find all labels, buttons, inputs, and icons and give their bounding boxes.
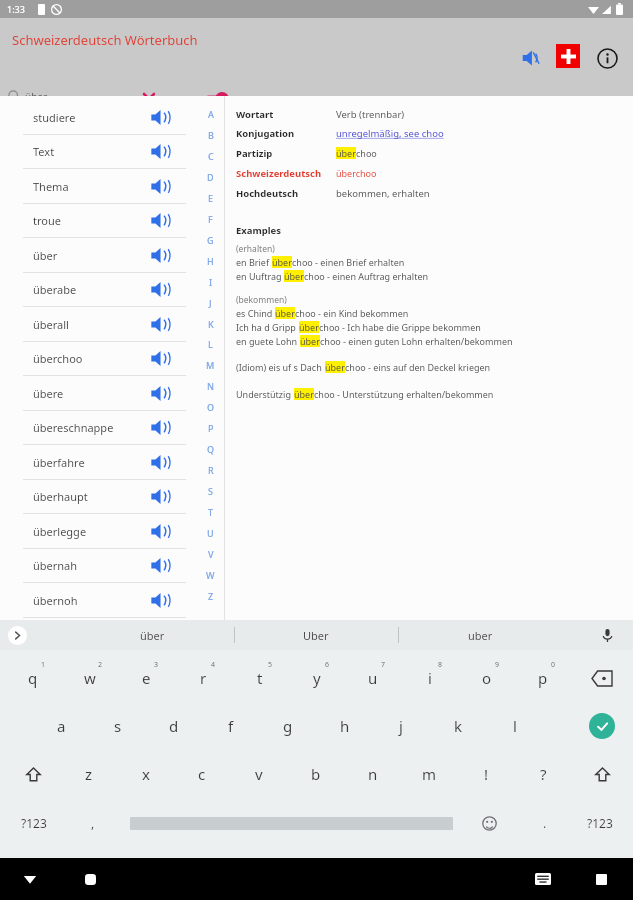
button[interactable]: über	[92, 620, 212, 650]
button[interactable]: Play Text	[146, 138, 172, 164]
button[interactable]: Volltext	[160, 87, 230, 111]
button[interactable]: Voice input	[596, 624, 618, 646]
button[interactable]: o	[459, 654, 515, 702]
button[interactable]: y	[289, 654, 345, 702]
button[interactable]: G	[196, 230, 225, 250]
button[interactable]: Uber	[256, 620, 376, 650]
button[interactable]: z	[61, 750, 117, 798]
button[interactable]: uber	[420, 620, 540, 650]
button[interactable]: R	[196, 460, 225, 480]
button[interactable]: übereschnappe	[0, 410, 196, 444]
button[interactable]: Text	[0, 134, 196, 168]
button[interactable]: j	[373, 702, 429, 750]
button[interactable]: v	[231, 750, 287, 798]
button[interactable]: Shift	[8, 750, 58, 798]
button[interactable]: Thema	[0, 169, 196, 203]
button[interactable]: k	[430, 702, 486, 750]
button[interactable]: Play studiere	[146, 104, 172, 130]
button[interactable]: unregelmäßig, see choo	[336, 127, 444, 140]
button[interactable]: überabe	[0, 272, 196, 306]
button[interactable]: Play überlegge	[146, 518, 172, 544]
button[interactable]: x	[118, 750, 174, 798]
button[interactable]: p	[515, 654, 571, 702]
button[interactable]: übernah	[0, 548, 196, 582]
button[interactable]: U	[196, 523, 225, 543]
button[interactable]: J	[196, 293, 225, 313]
button[interactable]: Play überall	[146, 311, 172, 337]
button[interactable]: übernoh	[0, 583, 196, 617]
button[interactable]: C	[196, 146, 225, 166]
button[interactable]: T	[196, 502, 225, 522]
button[interactable]: u	[345, 654, 401, 702]
button[interactable]: überfahre	[0, 445, 196, 479]
button[interactable]: t	[232, 654, 288, 702]
button[interactable]: Space	[126, 798, 456, 848]
button[interactable]: überhaupt	[0, 479, 196, 513]
button[interactable]: überlegge	[0, 514, 196, 548]
button[interactable]: Clear search	[137, 87, 161, 111]
button[interactable]: Play Thema	[146, 173, 172, 199]
button[interactable]: L	[196, 334, 225, 354]
button[interactable]: ?	[515, 750, 571, 798]
button[interactable]: l	[487, 702, 543, 750]
button[interactable]: B	[196, 125, 225, 145]
button[interactable]: i	[402, 654, 458, 702]
button[interactable]: überall	[0, 307, 196, 341]
button[interactable]: f	[203, 702, 259, 750]
button[interactable]: r	[175, 654, 231, 702]
button[interactable]: überchoo	[0, 341, 196, 375]
button[interactable]: Play übereschnappe	[146, 414, 172, 440]
button[interactable]: q	[5, 654, 61, 702]
button[interactable]: e	[118, 654, 174, 702]
button[interactable]: g	[260, 702, 316, 750]
button[interactable]: ?123	[6, 798, 62, 848]
button[interactable]: übere	[0, 376, 196, 410]
button[interactable]: E	[196, 188, 225, 208]
button[interactable]: Q	[196, 439, 225, 459]
button[interactable]: Play überchoo	[146, 345, 172, 371]
button[interactable]: über	[8, 86, 138, 110]
button[interactable]: Play überhaupt	[146, 483, 172, 509]
button[interactable]: M	[196, 355, 225, 375]
button[interactable]: Play über	[146, 242, 172, 268]
button[interactable]: b	[288, 750, 344, 798]
button[interactable]: H	[196, 251, 225, 271]
button[interactable]: Recent apps	[589, 867, 613, 891]
button[interactable]: S	[196, 481, 225, 501]
button[interactable]: Play übernah	[146, 552, 172, 578]
button[interactable]: Info	[593, 44, 621, 72]
button[interactable]: F	[196, 209, 225, 229]
button[interactable]: Comma	[68, 798, 118, 848]
button[interactable]: Z	[196, 586, 225, 606]
button[interactable]: c	[174, 750, 230, 798]
button[interactable]: w	[62, 654, 118, 702]
button[interactable]: Period	[520, 798, 570, 848]
button[interactable]: studiere	[0, 100, 196, 134]
button[interactable]: Emoji	[464, 798, 514, 848]
button[interactable]: Home	[78, 867, 102, 891]
button[interactable]: ?123	[572, 798, 628, 848]
button[interactable]: O	[196, 397, 225, 417]
button[interactable]: über	[0, 238, 196, 272]
button[interactable]: Mute sound	[517, 44, 545, 72]
button[interactable]: Play übere	[146, 380, 172, 406]
button[interactable]: troue	[0, 203, 196, 237]
button[interactable]: A	[196, 104, 225, 124]
button[interactable]: W	[196, 565, 225, 585]
button[interactable]: Play überfahre	[146, 449, 172, 475]
button[interactable]: Play überabe	[146, 276, 172, 302]
button[interactable]: Switch keyboard	[531, 867, 555, 891]
button[interactable]: P	[196, 418, 225, 438]
button[interactable]: Backspace	[576, 654, 628, 702]
button[interactable]: Enter	[576, 702, 628, 750]
button[interactable]: s	[90, 702, 146, 750]
button[interactable]: N	[196, 376, 225, 396]
button[interactable]: Shift	[576, 750, 628, 798]
button[interactable]: K	[196, 314, 225, 334]
button[interactable]: I	[196, 272, 225, 292]
button[interactable]: Play übernoh	[146, 587, 172, 613]
button[interactable]: n	[345, 750, 401, 798]
button[interactable]: !	[458, 750, 514, 798]
button[interactable]: Expand suggestions	[8, 626, 27, 645]
button[interactable]: h	[317, 702, 373, 750]
